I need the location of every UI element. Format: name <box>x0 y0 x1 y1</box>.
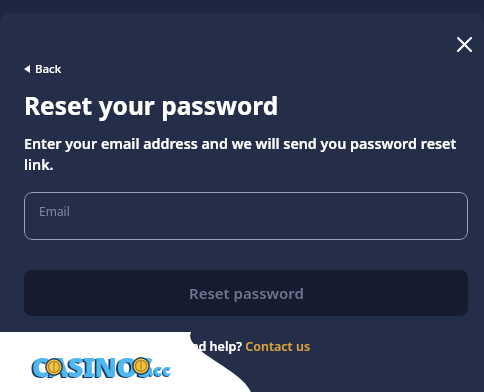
staticText: Need help? Contact us <box>174 338 311 355</box>
staticText: Email <box>39 203 70 219</box>
button[interactable]: Close <box>446 26 482 62</box>
button[interactable]: Need help? Contact us <box>174 338 311 355</box>
staticText: Reset password <box>189 283 304 303</box>
staticText: .cc <box>148 360 170 382</box>
button[interactable]: Casinos.cc logo <box>30 350 180 384</box>
staticText: Back <box>35 61 62 77</box>
staticText: Enter your email address and we will sen… <box>24 134 468 175</box>
staticText: .cc <box>149 359 171 381</box>
staticText: Reset your password <box>24 89 279 122</box>
button[interactable]: Back <box>24 61 62 77</box>
button[interactable]: Email <box>24 192 468 240</box>
staticText: CASINOS <box>32 348 153 382</box>
staticText: CASINOS <box>30 349 151 383</box>
button[interactable]: Reset password <box>24 270 468 316</box>
